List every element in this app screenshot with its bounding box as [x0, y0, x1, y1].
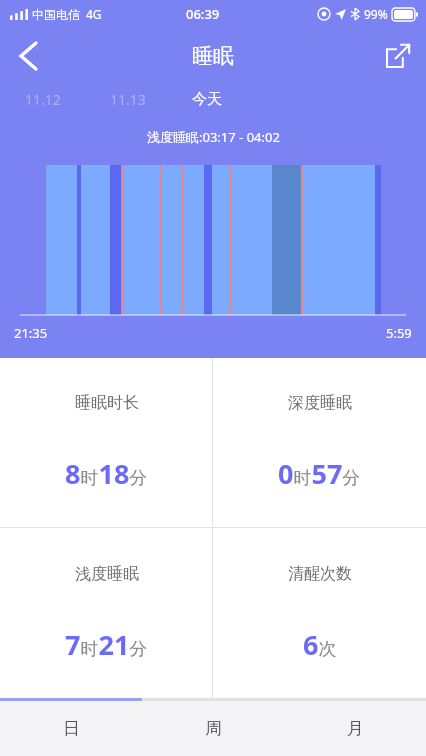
button[interactable]: 睡眠时长 — [0, 358, 212, 527]
button[interactable]: 日 — [0, 701, 142, 756]
staticText: 8时18分 — [65, 455, 148, 492]
button[interactable]: 周 — [142, 701, 284, 756]
button[interactable]: Back — [0, 28, 56, 84]
staticText: 21:35 — [14, 324, 48, 342]
staticText: 睡眠 — [192, 43, 234, 69]
button[interactable]: 今天 — [192, 90, 222, 109]
staticText: 5:59 — [386, 324, 412, 342]
button[interactable]: 11.12 — [25, 90, 61, 109]
staticText: 深度睡眠 — [288, 393, 352, 413]
button[interactable]: Share — [370, 28, 426, 84]
staticText: 睡眠时长 — [75, 393, 139, 413]
staticText: 99% — [364, 6, 388, 22]
button[interactable]: 浅度睡眠 — [0, 528, 212, 698]
staticText: 浅度睡眠:03:17 - 04:02 — [147, 128, 280, 146]
staticText: 清醒次数 — [288, 564, 352, 584]
button[interactable]: 11.13 — [110, 90, 146, 109]
staticText: 06:39 — [186, 5, 220, 23]
button[interactable]: 清醒次数 — [213, 528, 426, 698]
staticText: 0时57分 — [278, 455, 361, 492]
staticText: 月 — [347, 718, 364, 739]
staticText: 浅度睡眠 — [75, 564, 139, 584]
staticText: 周 — [205, 718, 222, 739]
button[interactable]: 深度睡眠 — [213, 358, 426, 527]
staticText: 6次 — [303, 626, 337, 663]
staticText: 日 — [63, 718, 80, 739]
button[interactable]: 月 — [284, 701, 426, 756]
staticText: 4G — [86, 6, 102, 22]
staticText: 中国电信 — [32, 7, 80, 22]
staticText: 7时21分 — [65, 626, 148, 663]
